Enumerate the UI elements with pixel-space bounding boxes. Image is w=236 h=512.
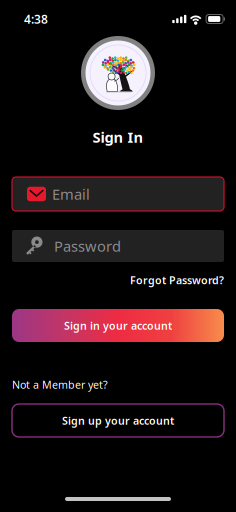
button[interactable]: Forgot Password? — [130, 273, 224, 287]
staticText: Sign up your account — [62, 413, 174, 428]
staticText: Not a Member yet? — [12, 377, 108, 392]
staticText: Sign In — [92, 127, 143, 147]
staticText: Email — [52, 184, 90, 204]
staticText: 4:38 — [24, 11, 48, 27]
staticText: Sign in your account — [64, 318, 172, 333]
button[interactable]: Sign in your account — [12, 309, 224, 342]
button[interactable]: Sign up your account — [12, 404, 224, 437]
staticText: Password — [54, 236, 121, 256]
staticText: Forgot Password? — [130, 273, 224, 287]
